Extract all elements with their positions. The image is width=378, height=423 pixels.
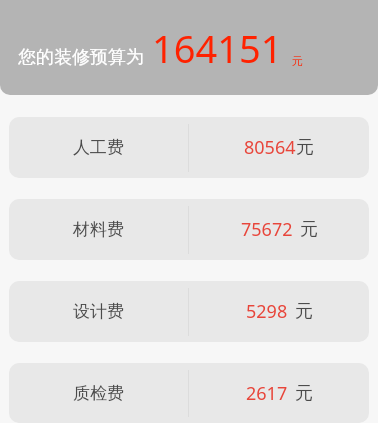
button[interactable]: 设计费: [9, 281, 369, 342]
staticText: 5298: [246, 299, 288, 324]
staticText: 元: [300, 218, 318, 241]
staticText: 80564: [244, 135, 296, 160]
staticText: 元: [296, 136, 314, 159]
staticText: 元: [292, 54, 303, 68]
button[interactable]: 质检费: [9, 363, 369, 423]
button[interactable]: 人工费: [9, 117, 369, 178]
staticText: 您的装修预算为: [18, 46, 144, 69]
staticText: 元: [295, 382, 313, 405]
button[interactable]: 材料费: [9, 199, 369, 260]
button[interactable]: 您的装修预算为: [0, 0, 378, 95]
staticText: 材料费: [73, 219, 124, 240]
staticText: 质检费: [73, 383, 124, 404]
staticText: 75672: [241, 217, 293, 242]
staticText: 2617: [246, 381, 288, 406]
staticText: 设计费: [73, 301, 124, 322]
staticText: 元: [295, 300, 313, 323]
staticText: 164151: [152, 22, 283, 74]
staticText: 人工费: [73, 137, 124, 158]
